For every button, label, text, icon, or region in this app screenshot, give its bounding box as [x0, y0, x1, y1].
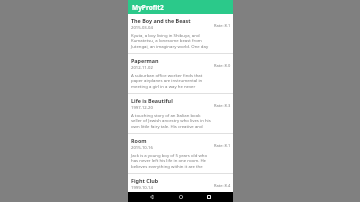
staticText: Paperman: [131, 57, 159, 64]
staticText: Rate: 8.1: [214, 143, 231, 148]
button[interactable]: MyProfit2: [128, 0, 233, 14]
button[interactable]: Paperman: [128, 54, 233, 93]
staticText: A suburban office worker finds that pape…: [131, 72, 212, 90]
button[interactable]: Back: [147, 192, 157, 202]
button[interactable]: Life is Beautiful: [128, 94, 233, 133]
button[interactable]: Home: [176, 192, 186, 202]
staticText: 2012-11-02: [131, 65, 153, 71]
staticText: 2015-10-16: [131, 145, 153, 151]
staticText: Rate: 8.3: [214, 103, 231, 108]
staticText: MyProfit2: [132, 3, 164, 12]
staticText: Fight Club: [131, 177, 159, 184]
staticText: 2015-03-04: [131, 25, 153, 31]
button[interactable]: Recent apps: [204, 192, 214, 202]
staticText: Kyuta, a boy living in Shibuya, and Kuma…: [131, 32, 212, 50]
button[interactable]: Room: [128, 134, 233, 173]
button[interactable]: Fight Club: [128, 174, 233, 192]
button[interactable]: The Boy and the Beast: [128, 14, 233, 53]
staticText: Rate: 8.0: [214, 63, 231, 68]
staticText: Jack is a young boy of 5 years old who h…: [131, 152, 212, 170]
staticText: Rate: 8.4: [214, 183, 231, 188]
staticText: Room: [131, 137, 147, 144]
staticText: 1997-12-20: [131, 105, 153, 111]
staticText: 1999-10-14: [131, 185, 153, 189]
staticText: Rate: 8.1: [214, 23, 231, 28]
staticText: A touching story of an Italian book sell…: [131, 112, 212, 130]
staticText: The Boy and the Beast: [131, 17, 191, 24]
staticText: Life is Beautiful: [131, 97, 173, 104]
